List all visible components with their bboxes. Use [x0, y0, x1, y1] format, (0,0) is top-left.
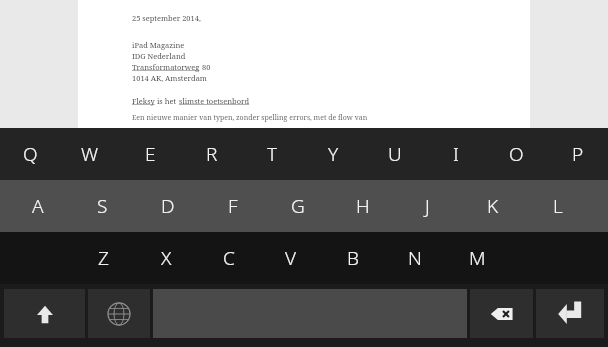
staticText: B: [347, 245, 359, 271]
button[interactable]: W: [60, 128, 120, 180]
button[interactable]: 25 september 2014,: [78, 0, 530, 128]
button[interactable]: N: [384, 232, 446, 284]
staticText: S: [97, 193, 108, 219]
staticText: Q: [23, 141, 38, 167]
staticText: G: [291, 193, 305, 219]
staticText: M: [469, 245, 486, 271]
button[interactable]: Y: [303, 128, 364, 180]
button[interactable]: B: [322, 232, 384, 284]
staticText: T: [267, 141, 278, 167]
button[interactable]: F: [200, 180, 265, 232]
button[interactable]: R: [181, 128, 242, 180]
button[interactable]: L: [525, 180, 590, 232]
staticText: A: [32, 193, 44, 219]
staticText: U: [388, 141, 402, 167]
staticText: I: [453, 141, 459, 167]
staticText: Een nieuwe manier van typen, zonder spel…: [132, 113, 368, 123]
button[interactable]: X: [135, 232, 198, 284]
staticText: O: [509, 141, 524, 167]
button[interactable]: Numbers and symbols: [88, 289, 150, 338]
staticText: E: [145, 141, 156, 167]
button[interactable]: Q: [0, 128, 60, 180]
button[interactable]: D: [135, 180, 200, 232]
staticText: J: [425, 193, 430, 219]
button[interactable]: G: [265, 180, 330, 232]
staticText: Z: [98, 245, 109, 271]
button[interactable]: V: [260, 232, 322, 284]
button[interactable]: Z: [72, 232, 135, 284]
button[interactable]: T: [242, 128, 303, 180]
staticText: Fleksy: [132, 96, 155, 106]
staticText: is het: [155, 96, 179, 106]
staticText: N: [408, 245, 422, 271]
staticText: slimste toetsenbord: [179, 96, 250, 106]
staticText: IDG Nederland: [132, 51, 186, 61]
button[interactable]: O: [486, 128, 547, 180]
button[interactable]: C: [198, 232, 260, 284]
staticText: L: [553, 193, 563, 219]
staticText: 80: [200, 62, 211, 72]
staticText: 1014 AK, Amsterdam: [132, 73, 207, 83]
staticText: C: [223, 245, 235, 271]
staticText: Y: [328, 141, 339, 167]
staticText: iPad Magazine: [132, 40, 185, 50]
staticText: V: [285, 245, 297, 271]
button[interactable]: J: [395, 180, 460, 232]
button[interactable]: P: [547, 128, 608, 180]
button[interactable]: E: [120, 128, 181, 180]
button[interactable]: I: [425, 128, 486, 180]
staticText: H: [356, 193, 370, 219]
staticText: 25 september 2014,: [132, 13, 201, 23]
staticText: W: [81, 141, 99, 167]
button[interactable]: Enter: [536, 289, 604, 338]
staticText: Transformatorweg: [132, 62, 200, 72]
staticText: X: [161, 245, 172, 271]
button[interactable]: Shift: [4, 289, 85, 338]
staticText: D: [161, 193, 175, 219]
button[interactable]: K: [460, 180, 525, 232]
button[interactable]: S: [70, 180, 135, 232]
button[interactable]: M: [446, 232, 508, 284]
staticText: K: [487, 193, 499, 219]
staticText: P: [572, 141, 584, 167]
staticText: F: [228, 193, 238, 219]
button[interactable]: H: [330, 180, 395, 232]
button[interactable]: A: [6, 180, 70, 232]
staticText: R: [206, 141, 218, 167]
button[interactable]: Backspace: [470, 289, 533, 338]
button[interactable]: U: [364, 128, 425, 180]
